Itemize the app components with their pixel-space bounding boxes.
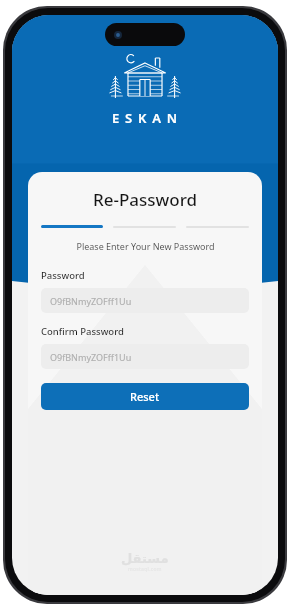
staticText: Please Enter Your New Password xyxy=(76,240,215,252)
staticText: Confirm Password xyxy=(41,325,124,338)
button[interactable]: Reset xyxy=(41,383,249,410)
button[interactable]: Confirm password field xyxy=(41,344,249,369)
staticText: E S K A N xyxy=(112,109,179,127)
staticText: Reset xyxy=(130,389,160,404)
button[interactable] xyxy=(41,225,103,228)
staticText: Re-Password xyxy=(93,188,198,211)
staticText: mostaql.com xyxy=(128,566,162,573)
button[interactable]: Password field xyxy=(41,288,249,313)
staticText: O9fBNmyZOFff1Uu xyxy=(50,295,132,307)
staticText: مستقل xyxy=(121,551,169,566)
staticText: Password xyxy=(41,269,85,282)
staticText: O9fBNmyZOFff1Uu xyxy=(50,351,132,363)
